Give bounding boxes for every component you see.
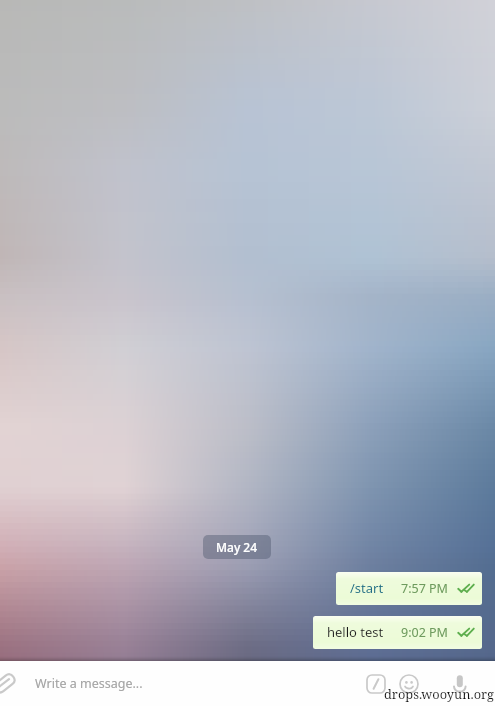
staticText: 7:57 PM	[401, 580, 448, 597]
staticText: drops.wooyun.org	[384, 685, 494, 702]
button[interactable]: Attach file	[0, 668, 20, 698]
button[interactable]: hello test	[313, 616, 482, 649]
button[interactable]: Record voice message	[445, 669, 475, 699]
staticText: Write a message...	[35, 675, 143, 692]
staticText: hello test	[327, 623, 384, 641]
button[interactable]: Bot commands	[361, 669, 391, 699]
button[interactable]: Emoji	[394, 669, 424, 699]
staticText: May 24	[216, 539, 258, 555]
button[interactable]: /start	[336, 572, 482, 605]
button[interactable]: May 24	[203, 535, 271, 559]
staticText: 9:02 PM	[401, 624, 448, 641]
staticText: /start	[350, 579, 384, 597]
